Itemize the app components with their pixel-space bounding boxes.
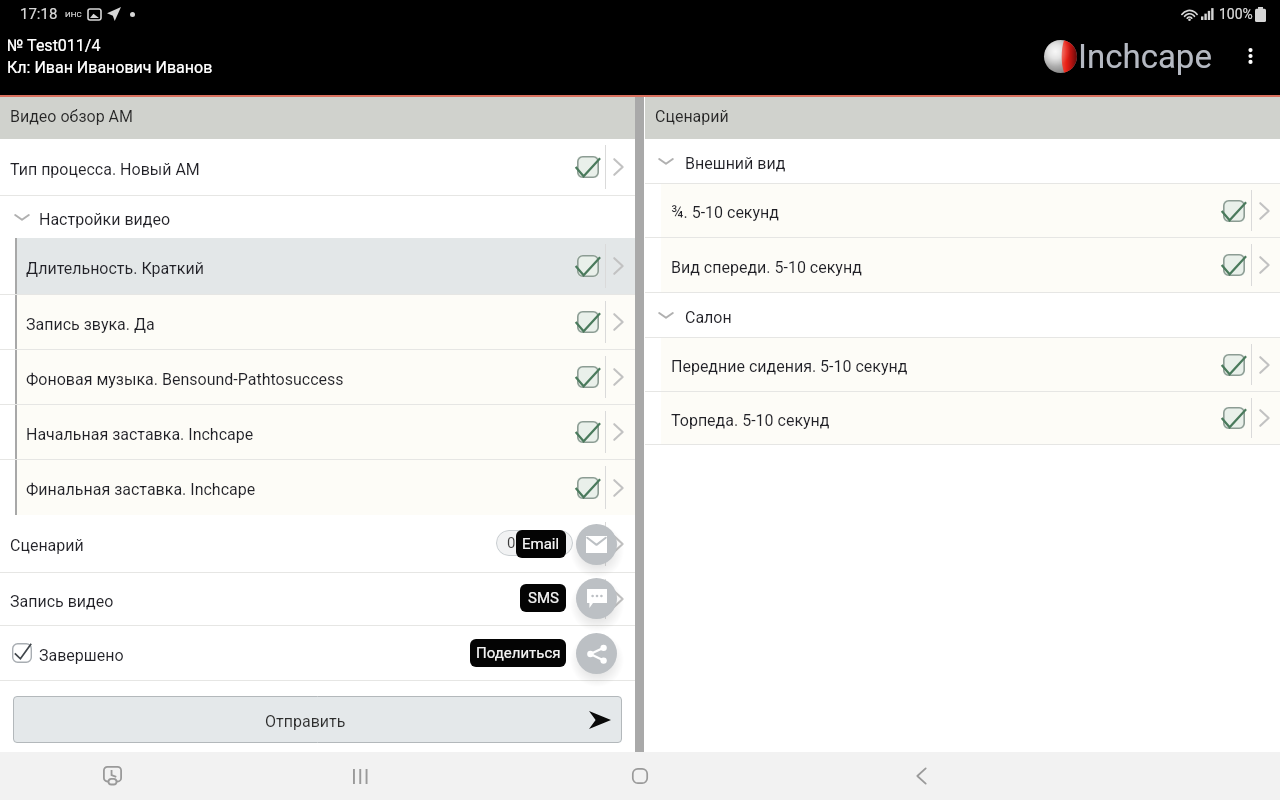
button[interactable]: Back: [887, 752, 955, 800]
staticText: Запись звука. Да: [26, 315, 577, 334]
button[interactable]: Email: [576, 524, 617, 565]
staticText: Email: [522, 535, 560, 553]
staticText: Поделиться: [476, 644, 561, 662]
staticText: ¾. 5-10 секунд: [671, 203, 1223, 222]
button[interactable]: Настройки видео: [0, 196, 635, 238]
staticText: Кл: Иван Иванович Иванов: [7, 58, 213, 77]
button[interactable]: Отправить: [13, 696, 622, 743]
button[interactable]: Салон: [645, 293, 1280, 337]
staticText: Внешний вид: [685, 154, 786, 173]
button[interactable]: Запись видео: [0, 573, 635, 625]
button[interactable]: Передние сидения. 5-10 секунд: [645, 338, 1280, 391]
button[interactable]: Запись звука. Да: [0, 295, 635, 349]
staticText: Сценарий: [655, 107, 729, 126]
staticText: Inchcape: [1078, 37, 1212, 76]
button[interactable]: Тип процесса. Новый АМ: [0, 139, 635, 195]
button[interactable]: Поделиться: [576, 633, 617, 674]
staticText: Начальная заставка. Inchcape: [26, 425, 577, 444]
button[interactable]: Завершено: [0, 626, 635, 680]
button[interactable]: Сценарий: [0, 515, 635, 572]
staticText: Торпеда. 5-10 секунд: [671, 411, 1223, 430]
staticText: 100%: [1219, 6, 1253, 22]
staticText: Отправить: [265, 712, 346, 731]
staticText: 17:18: [20, 5, 58, 23]
staticText: Видео обзор АМ: [10, 107, 134, 126]
button[interactable]: Вид спереди. 5-10 секунд: [645, 238, 1280, 292]
button[interactable]: SMS: [576, 578, 617, 619]
button[interactable]: More options: [1234, 40, 1266, 72]
staticText: Запись видео: [10, 592, 114, 611]
button[interactable]: Внешний вид: [645, 139, 1280, 183]
staticText: Настройки видео: [39, 210, 171, 229]
staticText: Длительность. Краткий: [26, 259, 577, 278]
staticText: SMS: [528, 589, 559, 607]
staticText: ИНС: [65, 10, 82, 19]
staticText: Сценарий: [10, 536, 84, 555]
staticText: Фоновая музыка. Bensound-Pathtosuccess: [26, 370, 577, 389]
staticText: Вид спереди. 5-10 секунд: [671, 258, 1223, 277]
staticText: № Test011/4: [7, 36, 101, 55]
button[interactable]: Home: [606, 752, 674, 800]
button[interactable]: ¾. 5-10 секунд: [645, 184, 1280, 237]
button[interactable]: Торпеда. 5-10 секунд: [645, 392, 1280, 444]
staticText: Финальная заставка. Inchcape: [26, 480, 577, 499]
staticText: 0: [507, 534, 516, 552]
button[interactable]: Фоновая музыка. Bensound-Pathtosuccess: [0, 350, 635, 404]
staticText: Передние сидения. 5-10 секунд: [671, 357, 1223, 376]
button[interactable]: Финальная заставка. Inchcape: [0, 460, 635, 515]
button[interactable]: Начальная заставка. Inchcape: [0, 405, 635, 459]
button[interactable]: Keyboard: [78, 752, 146, 800]
button[interactable]: Длительность. Краткий: [0, 238, 635, 294]
staticText: Тип процесса. Новый АМ: [10, 160, 577, 179]
staticText: Салон: [685, 308, 732, 327]
staticText: Завершено: [39, 646, 124, 665]
button[interactable]: Recent apps: [326, 752, 394, 800]
